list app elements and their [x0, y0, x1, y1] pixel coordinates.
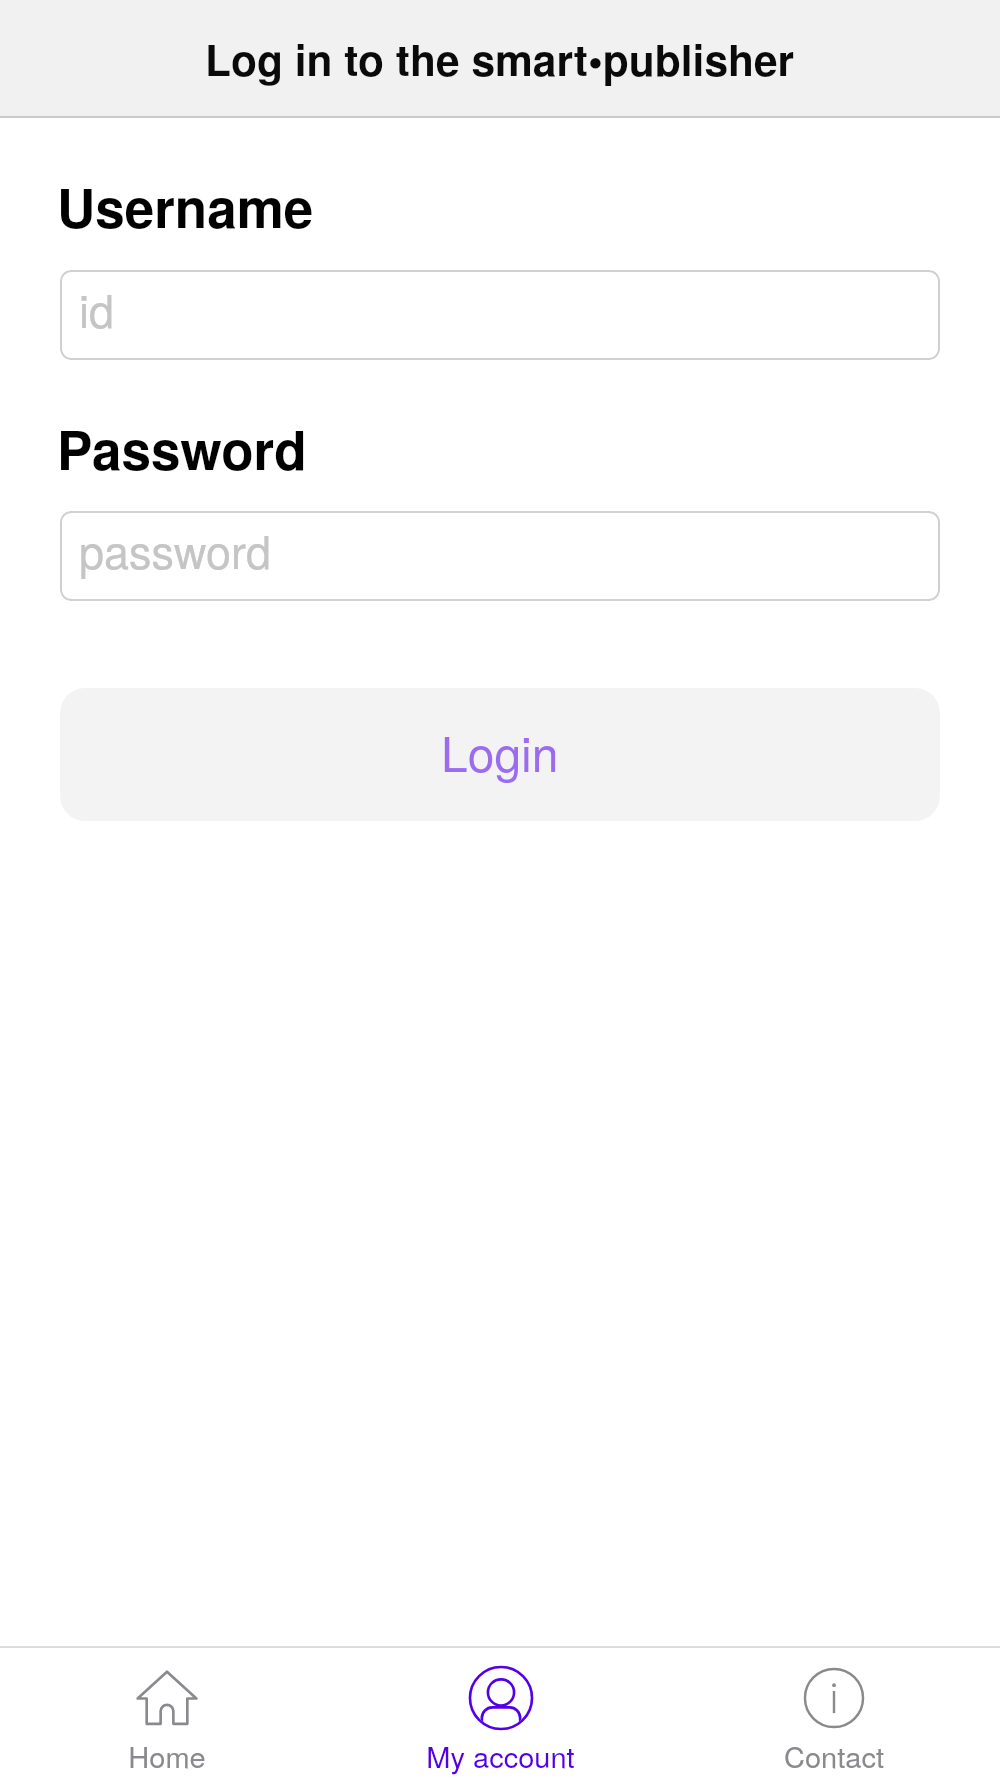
staticText: Password	[57, 410, 307, 486]
staticText: password	[79, 517, 272, 581]
staticText: Log in to the smart•publisher	[205, 28, 795, 89]
other: My account	[468, 1665, 534, 1731]
staticText: id	[79, 276, 115, 340]
staticText: Username	[57, 168, 314, 244]
button[interactable]: Contact	[667, 1648, 1000, 1778]
staticText: Home	[128, 1735, 206, 1777]
staticText: My account	[426, 1735, 575, 1777]
button[interactable]: Home	[0, 1648, 334, 1778]
button[interactable]: My account	[334, 1648, 667, 1778]
staticText: Login	[441, 717, 559, 786]
button[interactable]: password	[60, 511, 940, 601]
button[interactable]: id	[60, 270, 940, 360]
staticText: Contact	[784, 1735, 884, 1777]
other: Contact	[801, 1665, 867, 1731]
button[interactable]: Login	[60, 688, 940, 821]
other: Home	[134, 1665, 200, 1731]
